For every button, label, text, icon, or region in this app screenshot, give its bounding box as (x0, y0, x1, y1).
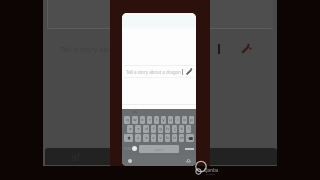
button[interactable]: Back (186, 158, 191, 163)
staticText: p (190, 117, 193, 123)
button[interactable]: Shift (124, 134, 133, 142)
staticText: l (188, 126, 190, 132)
button[interactable]: d (143, 125, 149, 133)
staticText: Qanba (204, 167, 219, 173)
staticText: Tell a story about dragons (60, 44, 152, 54)
button[interactable]: Magic wand (185, 67, 194, 76)
staticText: STUDIO (206, 172, 215, 175)
staticText: y (162, 117, 165, 123)
staticText: j (174, 126, 176, 132)
button[interactable]: Space (139, 145, 179, 153)
button[interactable]: l (186, 125, 191, 133)
staticText: z (137, 135, 139, 141)
staticText: f (153, 126, 155, 132)
staticText: g (159, 126, 162, 132)
staticText: r (149, 117, 151, 123)
staticText: m (180, 135, 184, 141)
staticText: v (159, 135, 162, 141)
button[interactable]: z (135, 134, 141, 142)
button[interactable]: j (172, 125, 177, 133)
button[interactable]: a (127, 125, 133, 133)
staticText: t (156, 117, 158, 123)
button[interactable]: q (124, 116, 130, 124)
staticText: space (154, 147, 164, 152)
staticText: w (133, 117, 137, 123)
button[interactable]: x (143, 134, 149, 142)
staticText: k (180, 126, 183, 132)
button[interactable]: g (158, 125, 163, 133)
staticText: d (145, 126, 148, 132)
button[interactable]: w (132, 116, 138, 124)
button[interactable]: v (158, 134, 163, 142)
button[interactable]: n (172, 134, 177, 142)
staticText: u (169, 117, 172, 123)
staticText: a (129, 126, 132, 132)
button[interactable]: Magic wand (240, 43, 252, 55)
button[interactable]: b (165, 134, 170, 142)
staticText: h (166, 126, 169, 132)
button[interactable]: u (168, 116, 173, 124)
button[interactable]: r (147, 116, 152, 124)
button[interactable]: i (175, 116, 180, 124)
button[interactable]: t (154, 116, 159, 124)
button[interactable]: e (140, 116, 145, 124)
staticText: i (177, 117, 179, 123)
button[interactable]: Home (128, 159, 132, 163)
staticText: b (166, 135, 169, 141)
button[interactable]: p (189, 116, 194, 124)
button[interactable]: h (165, 125, 170, 133)
button[interactable]: y (161, 116, 166, 124)
button[interactable]: c (151, 134, 156, 142)
button[interactable]: Backspace (186, 134, 194, 142)
staticText: e (141, 117, 144, 123)
button[interactable]: s (135, 125, 141, 133)
button[interactable]: k (179, 125, 184, 133)
staticText: ?123 (124, 147, 131, 151)
button[interactable]: o (182, 116, 187, 124)
button[interactable]: Enter (184, 145, 195, 153)
button[interactable]: f (151, 125, 156, 133)
button[interactable]: Tell a story about a dragon (122, 66, 196, 77)
staticText: s (137, 126, 140, 132)
staticText: o (183, 117, 186, 123)
staticText: n (173, 135, 176, 141)
button[interactable]: Language (132, 146, 137, 151)
button[interactable]: Symbols (123, 145, 132, 153)
staticText: q (126, 117, 129, 123)
staticText: Tell a story about a dragon (126, 69, 181, 75)
staticText: x (145, 135, 148, 141)
button[interactable]: m (179, 134, 184, 142)
staticText: c (152, 135, 155, 141)
